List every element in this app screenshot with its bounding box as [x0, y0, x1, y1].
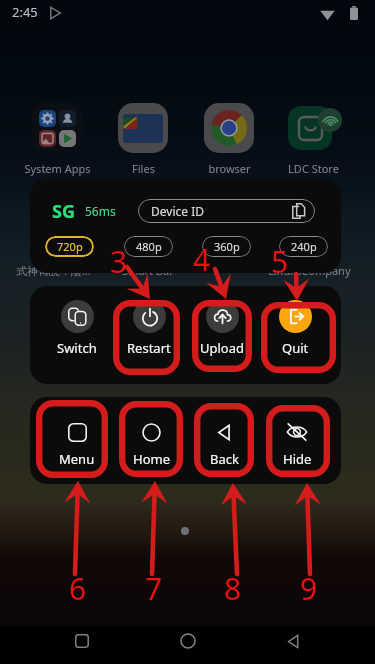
other: Menu	[68, 423, 87, 442]
button[interactable]: Back	[270, 618, 316, 664]
other: Quit	[286, 307, 305, 326]
staticText: Restart	[127, 339, 171, 357]
staticText: 式神傳說：陰…	[16, 263, 91, 278]
staticText: 480p	[136, 239, 162, 254]
other: Back	[215, 423, 234, 442]
staticText: SG	[52, 199, 75, 224]
button[interactable]: Menu	[44, 421, 110, 468]
button[interactable]: Device ID	[138, 199, 315, 223]
staticText: Back	[210, 450, 239, 468]
staticText: Menu	[59, 450, 95, 468]
button[interactable]: LDC Store	[273, 103, 353, 176]
staticText: System Apps	[24, 161, 91, 176]
button[interactable]: 480p	[124, 236, 173, 257]
button[interactable]: 720p	[45, 236, 94, 257]
button[interactable]: Home	[118, 421, 184, 468]
staticText: Files	[132, 161, 155, 176]
button[interactable]: Home	[165, 618, 211, 664]
staticText: 8	[224, 568, 242, 609]
staticText: LinuxsCompany	[268, 263, 351, 278]
staticText: 7	[145, 568, 163, 609]
staticText: 5	[271, 241, 289, 282]
button[interactable]: Restart	[116, 300, 182, 357]
staticText: Hide	[283, 450, 312, 468]
other: Restart	[141, 308, 159, 326]
staticText: LDC Store	[288, 161, 339, 176]
button[interactable]: Files	[103, 103, 183, 176]
button[interactable]: 240p	[279, 236, 328, 257]
staticText: Device ID	[151, 203, 204, 219]
staticText: 360p	[214, 239, 240, 254]
button[interactable]: Hide	[264, 421, 330, 468]
staticText: 720p	[57, 239, 83, 254]
staticText: 240p	[291, 239, 317, 254]
staticText: 3	[110, 241, 128, 282]
staticText: Quit	[282, 339, 309, 357]
staticText: Switch	[57, 339, 97, 357]
staticText: 9	[300, 568, 318, 609]
button[interactable]: browser	[189, 103, 269, 176]
button[interactable]: Recent apps	[59, 618, 105, 664]
button[interactable]: Switch device	[44, 300, 110, 357]
other: Home	[142, 423, 161, 442]
button[interactable]: 360p	[202, 236, 251, 257]
staticText: 2:45	[12, 3, 38, 21]
staticText: Home	[133, 450, 170, 468]
other: Play Store	[48, 6, 62, 20]
other: Upload	[213, 307, 232, 326]
button[interactable]: Upload	[189, 300, 255, 357]
staticText: 4	[193, 239, 211, 280]
other: Hide	[286, 421, 308, 443]
button[interactable]: Quit	[262, 300, 328, 357]
button[interactable]: Back	[191, 421, 257, 468]
staticText: Upload	[200, 339, 245, 357]
staticText: 6	[69, 568, 87, 609]
staticText: browser	[208, 161, 251, 176]
staticText: Smart Bar	[122, 263, 174, 278]
other: Switch device	[68, 307, 87, 326]
button[interactable]: System Apps	[17, 103, 97, 176]
staticText: 56ms	[85, 203, 116, 219]
